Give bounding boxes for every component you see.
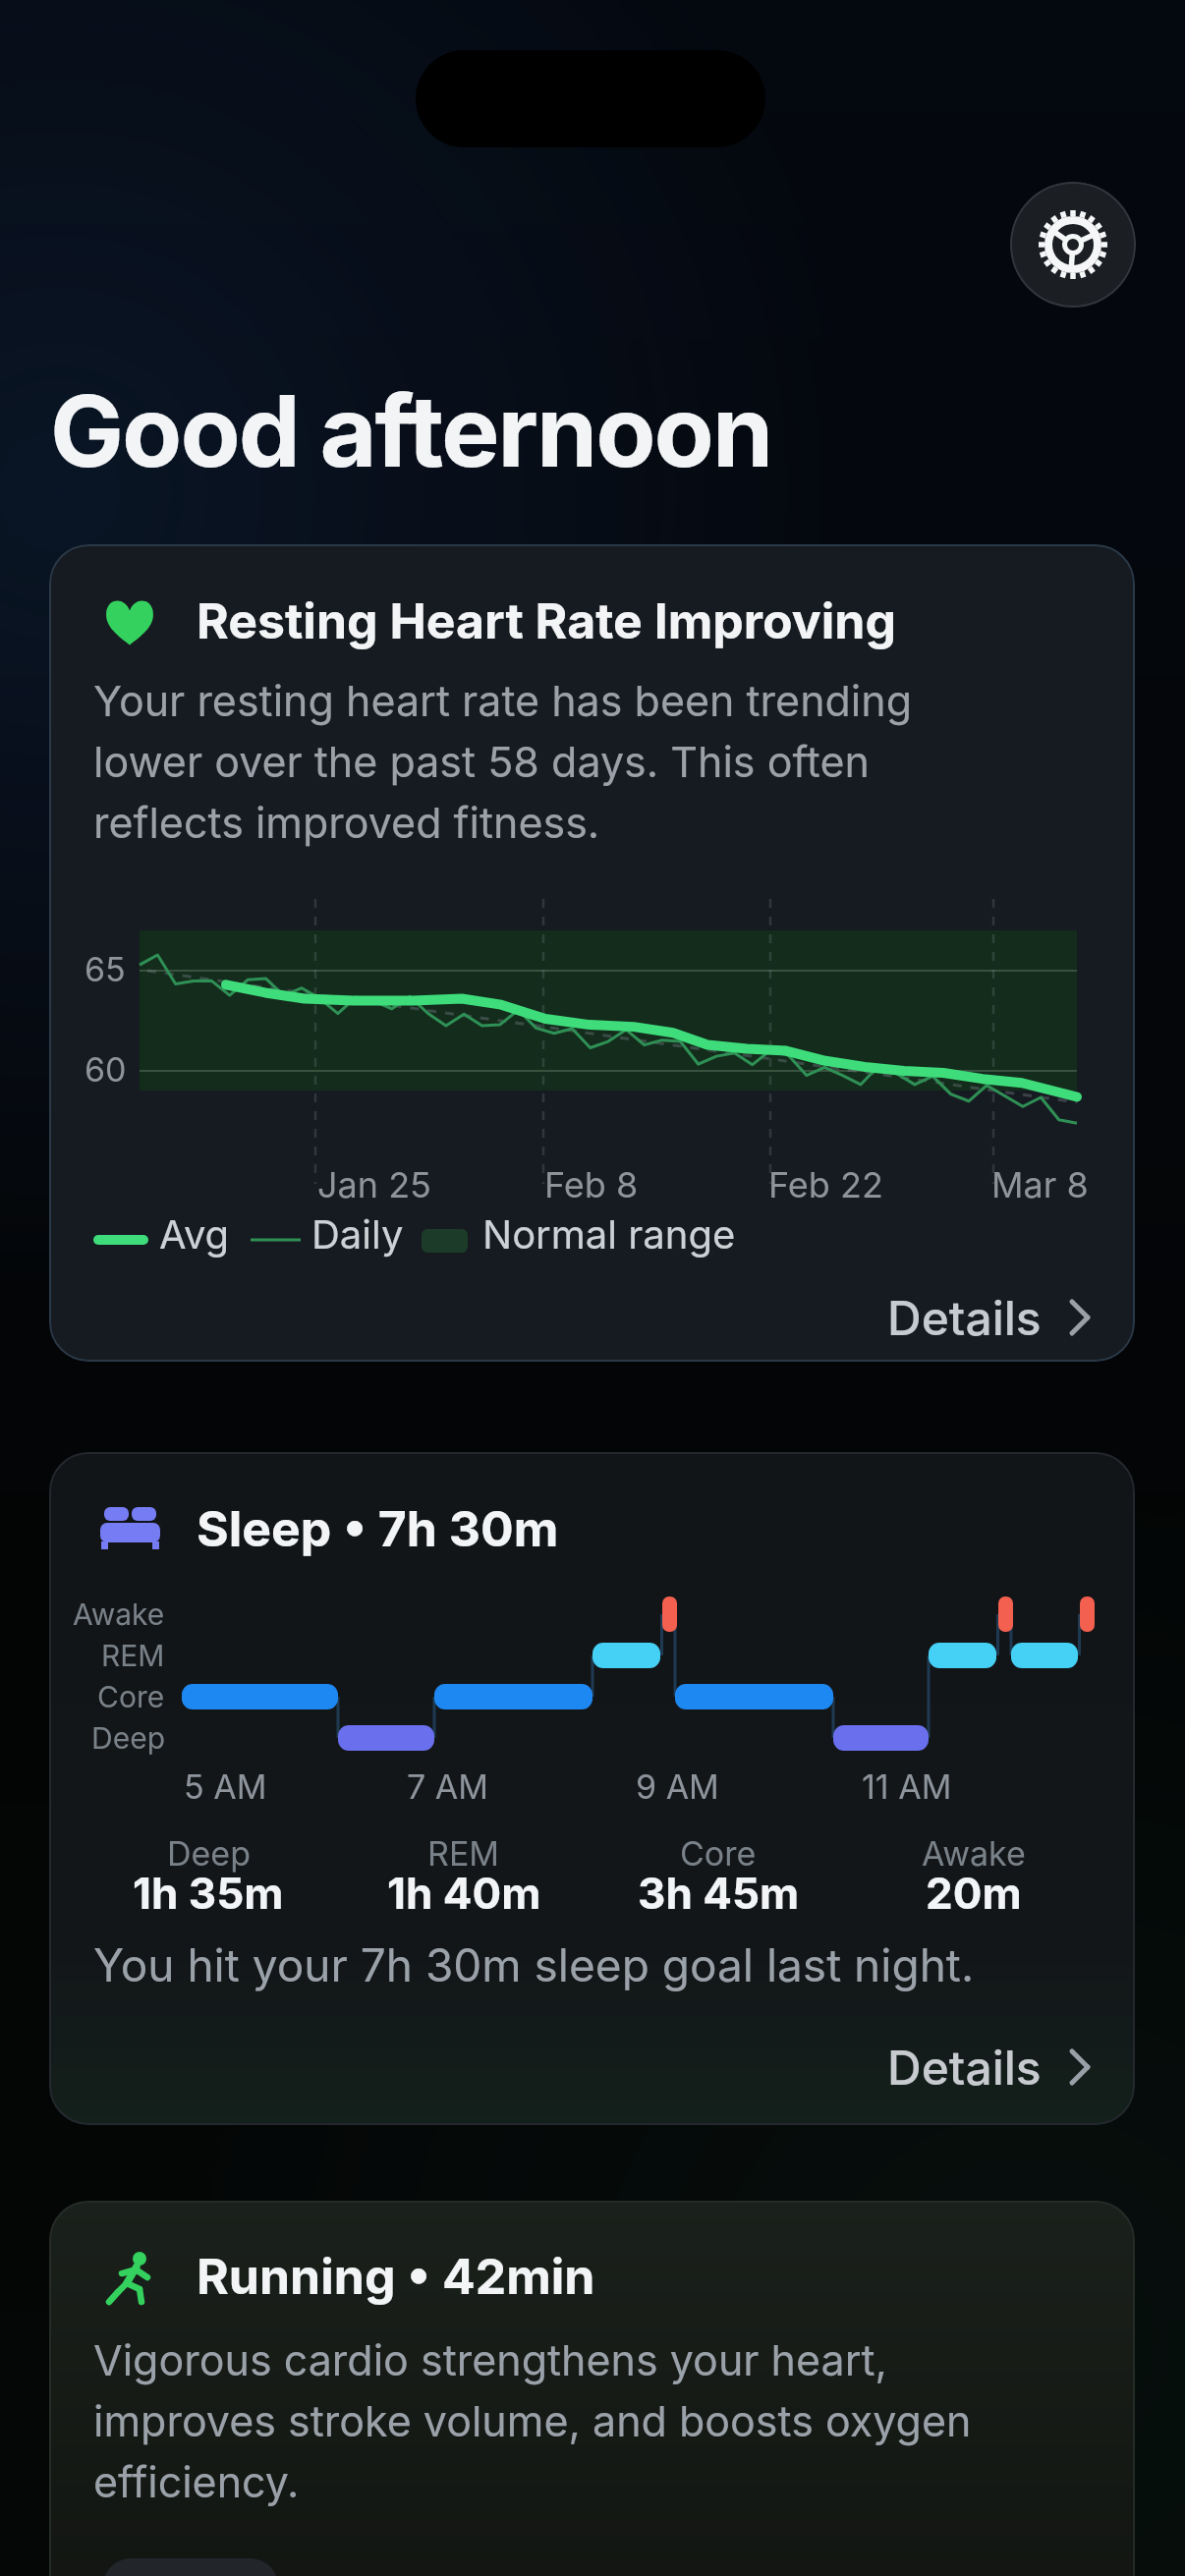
staticText: 60 (85, 1049, 127, 1090)
button[interactable] (49, 1452, 1135, 2125)
staticText: Jan 25 (317, 1163, 431, 1206)
staticText: Awake (73, 1596, 165, 1632)
staticText: Deep (91, 1720, 165, 1756)
staticText: Core (680, 1833, 757, 1874)
button[interactable] (103, 2558, 278, 2576)
staticText: Sleep • 7h 30m (197, 1499, 559, 1558)
staticText: 7 AM (407, 1766, 488, 1807)
staticText: 20m (926, 1867, 1022, 1919)
staticText: Feb 8 (544, 1163, 639, 1206)
button[interactable] (1010, 182, 1136, 308)
staticText: Normal range (482, 1210, 736, 1258)
staticText: Details (887, 1289, 1042, 1346)
staticText: 1h 40m (387, 1867, 541, 1919)
staticText: Your resting heart rate has been trendin… (93, 675, 913, 848)
staticText: Details (887, 2039, 1042, 2096)
staticText: 5 AM (184, 1766, 267, 1807)
button[interactable]: Details (796, 2033, 1042, 2101)
staticText: 3h 45m (638, 1867, 800, 1919)
staticText: Core (97, 1679, 165, 1714)
staticText: Mar 8 (991, 1163, 1089, 1206)
staticText: Avg (159, 1210, 230, 1258)
button[interactable] (49, 2201, 1135, 2576)
staticText: Vigorous cardio strengthens your heart, … (93, 2334, 972, 2507)
staticText: Good afternoon (50, 371, 772, 490)
staticText: Deep (167, 1833, 251, 1874)
staticText: 65 (85, 949, 126, 989)
staticText: Awake (922, 1833, 1026, 1874)
staticText: Feb 22 (768, 1163, 883, 1206)
staticText: 11 AM (862, 1766, 952, 1807)
staticText: 9 AM (636, 1766, 719, 1807)
button[interactable] (49, 544, 1135, 1362)
staticText: You hit your 7h 30m sleep goal last nigh… (93, 1937, 975, 1992)
staticText: REM (427, 1833, 500, 1874)
staticText: Daily (311, 1210, 404, 1258)
staticText: REM (101, 1638, 165, 1673)
staticText: Running • 42min (197, 2247, 595, 2306)
button[interactable]: Details (796, 1283, 1042, 1352)
staticText: Resting Heart Rate Improving (197, 591, 896, 650)
staticText: 1h 35m (133, 1867, 284, 1919)
